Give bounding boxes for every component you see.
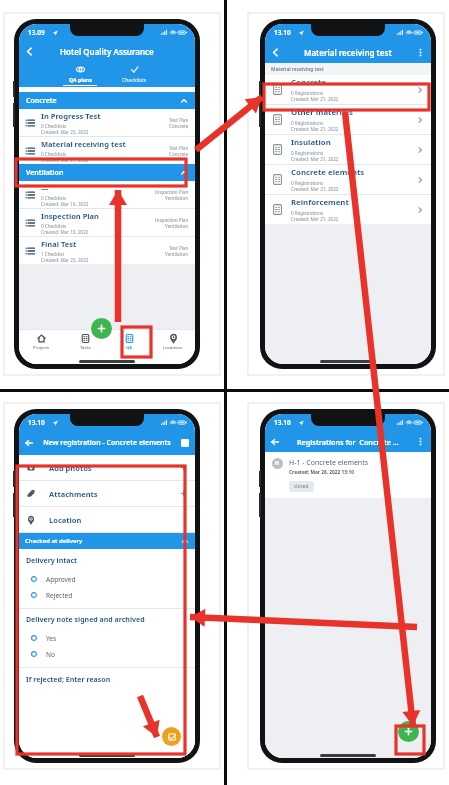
staticText: Concrete elements bbox=[291, 167, 365, 178]
button[interactable]: — bbox=[25, 181, 189, 208]
button[interactable]: Edit bbox=[162, 727, 181, 746]
staticText: Material receiving test bbox=[41, 139, 126, 149]
button[interactable]: Locations bbox=[151, 329, 195, 355]
staticText: Ventilation bbox=[26, 168, 64, 178]
button[interactable]: Reinforcement bbox=[272, 195, 424, 224]
button[interactable]: QA plans bbox=[60, 62, 100, 87]
staticText: 0 Checklists bbox=[41, 123, 67, 129]
button[interactable]: Save bbox=[181, 439, 189, 447]
staticText: 0 Checklists bbox=[41, 223, 67, 229]
button[interactable]: Attachments bbox=[27, 481, 187, 506]
button[interactable]: Concrete bbox=[272, 75, 424, 104]
button[interactable]: Projects bbox=[19, 329, 63, 355]
button[interactable]: Back bbox=[270, 47, 281, 58]
button[interactable]: Inspection Plan bbox=[25, 209, 189, 236]
button[interactable]: Insulation bbox=[272, 135, 424, 164]
staticText: Locations bbox=[163, 345, 183, 351]
staticText: Concrete bbox=[169, 151, 189, 157]
button[interactable]: Checked at delivery bbox=[25, 533, 189, 549]
button[interactable]: Back bbox=[270, 437, 280, 447]
staticText: 0 Registrations bbox=[291, 120, 324, 126]
staticText: 13.10 bbox=[28, 418, 45, 427]
button[interactable]: Checklists bbox=[114, 62, 154, 87]
button[interactable]: Rejected bbox=[31, 587, 195, 603]
staticText: QA plans bbox=[69, 76, 92, 83]
staticText: 13.10 bbox=[274, 28, 291, 37]
button[interactable]: No bbox=[31, 646, 195, 662]
staticText: Created: Mar 10, 2022 bbox=[41, 229, 89, 235]
staticText: Concrete bbox=[291, 77, 326, 88]
staticText: Tasks bbox=[80, 345, 91, 351]
staticText: 13.10 bbox=[274, 418, 291, 427]
button[interactable]: Approved bbox=[31, 571, 195, 587]
staticText: — bbox=[41, 183, 49, 193]
button[interactable]: Back bbox=[24, 46, 35, 57]
staticText: 0 Checklists bbox=[41, 151, 67, 157]
staticText: Insulation bbox=[291, 137, 331, 148]
staticText: Yes bbox=[46, 634, 57, 643]
staticText: Created: Mar 28, 2022 13:10 bbox=[289, 469, 354, 476]
staticText: closed bbox=[294, 483, 309, 490]
button[interactable]: Final Test bbox=[25, 237, 189, 264]
staticText: H-1 - Concrete elements bbox=[289, 458, 369, 468]
button[interactable]: Material receiving test bbox=[25, 137, 189, 164]
staticText: Created: Mar 10, 2022 bbox=[41, 201, 89, 207]
button[interactable]: N bbox=[265, 452, 431, 498]
staticText: Attachments bbox=[49, 489, 98, 499]
staticText: 1 Checklist bbox=[41, 251, 65, 257]
button[interactable]: Other materials bbox=[272, 105, 424, 134]
staticText: Concrete bbox=[169, 123, 189, 129]
staticText: No bbox=[46, 650, 55, 659]
staticText: Location bbox=[49, 515, 82, 525]
staticText: Inspection Plan bbox=[155, 217, 189, 223]
button[interactable]: QA bbox=[107, 329, 151, 355]
staticText: Material receiving test bbox=[304, 47, 392, 58]
staticText: Ventilation bbox=[165, 223, 189, 229]
button[interactable]: Tasks bbox=[63, 329, 107, 355]
staticText: Add photos bbox=[49, 463, 92, 473]
button[interactable]: More options bbox=[416, 437, 425, 446]
button[interactable]: Add photos bbox=[27, 455, 187, 480]
staticText: New registration - Concrete elements bbox=[43, 438, 171, 448]
staticText: Created: Mar 21, 2022 bbox=[291, 156, 339, 162]
staticText: 13.09 bbox=[28, 28, 45, 37]
staticText: Created: Mar 21, 2022 bbox=[291, 126, 339, 132]
staticText: Inspection Plan bbox=[41, 211, 99, 221]
button[interactable]: Concrete bbox=[26, 92, 188, 109]
staticText: Registrations for Concrete ... bbox=[297, 437, 399, 447]
staticText: Ventilation bbox=[165, 195, 189, 201]
staticText: Projects bbox=[33, 345, 50, 351]
staticText: Material receiving test bbox=[271, 66, 324, 73]
staticText: Other materials bbox=[291, 107, 353, 118]
staticText: Created: Mar 23, 2022 bbox=[41, 257, 89, 263]
staticText: Final Test bbox=[41, 239, 77, 249]
staticText: 0 Registrations bbox=[291, 90, 324, 96]
staticText: Checked at delivery bbox=[25, 537, 83, 545]
button[interactable]: Location bbox=[27, 507, 187, 532]
staticText: Test Plan bbox=[169, 117, 189, 123]
button[interactable]: More options bbox=[416, 48, 425, 57]
button[interactable]: Add registration bbox=[398, 721, 419, 742]
staticText: 0 Registrations bbox=[291, 180, 324, 186]
staticText: Created: Mar 21, 2022 bbox=[41, 157, 89, 163]
staticText: Checklists bbox=[122, 76, 147, 83]
staticText: Concrete bbox=[26, 96, 57, 106]
button[interactable]: Yes bbox=[31, 630, 195, 646]
staticText: If rejected; Enter reason bbox=[26, 675, 111, 685]
staticText: N bbox=[275, 460, 280, 467]
staticText: 0 Registrations bbox=[291, 150, 324, 156]
button[interactable]: Back bbox=[24, 438, 34, 448]
staticText: Approved bbox=[46, 575, 76, 584]
staticText: Hotel Quality Assurance bbox=[60, 46, 154, 57]
staticText: Reinforcement bbox=[291, 197, 349, 208]
staticText: Delivery intact bbox=[26, 556, 78, 566]
button[interactable]: In Progress Test bbox=[25, 109, 189, 136]
staticText: Created: Mar 21, 2022 bbox=[291, 186, 339, 192]
button[interactable]: Add bbox=[91, 318, 112, 339]
staticText: Delivery note signed and archived bbox=[26, 615, 145, 625]
staticText: Test Plan bbox=[169, 245, 189, 251]
staticText: 0 Checklists bbox=[41, 195, 67, 201]
button[interactable]: Concrete elements bbox=[272, 165, 424, 194]
button[interactable]: Ventilation bbox=[26, 164, 188, 181]
staticText: QA bbox=[126, 345, 132, 351]
